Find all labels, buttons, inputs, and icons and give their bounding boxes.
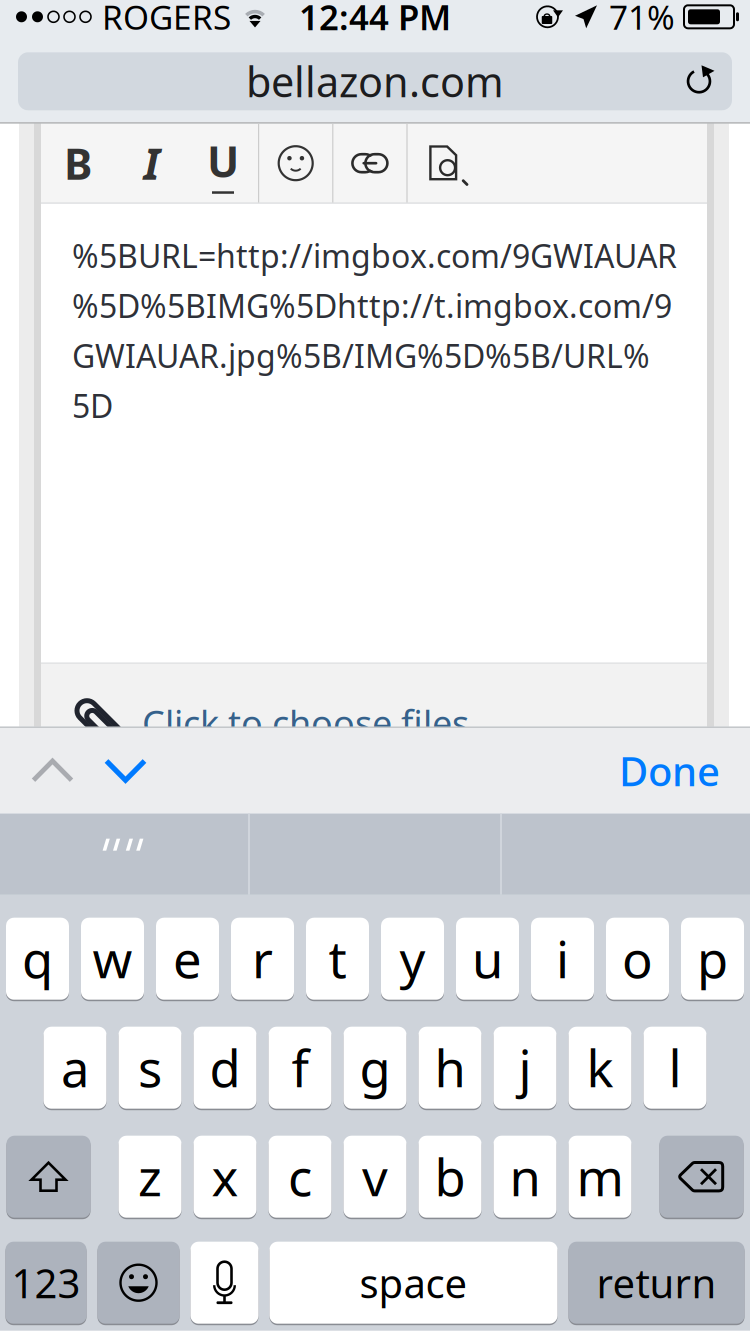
button[interactable]: k [568,1026,631,1110]
button[interactable]: f [268,1026,331,1110]
button[interactable]: c [268,1135,331,1219]
staticText: I [143,135,159,192]
staticText: h [434,1034,465,1101]
button[interactable]: w [81,917,144,1001]
button[interactable]: i [531,917,594,1001]
staticText: t [328,925,346,992]
button[interactable]: Click to choose files [125,703,469,743]
staticText: k [586,1034,613,1101]
staticText: %5D%5BIMG%5Dhttp://t.imgbox.com/9 [72,284,672,327]
button[interactable]: t [306,917,369,1001]
button[interactable]: Shift [6,1135,90,1219]
button[interactable]: q [6,917,69,1001]
button[interactable]: Quote marks suggestion [0,814,248,895]
button[interactable]: Insert link [333,124,406,203]
button[interactable]: Dictation [190,1241,258,1325]
button[interactable]: space [269,1241,557,1325]
button[interactable]: b [418,1135,481,1219]
button[interactable]: d [193,1026,256,1110]
staticText: j [518,1034,531,1101]
staticText: Click to choose files [142,699,469,747]
button[interactable]: n [493,1135,556,1219]
staticText: space [359,1256,467,1309]
staticText: bellazon.com [246,54,504,109]
staticText: 5D [72,384,113,427]
staticText: y [399,925,425,992]
button[interactable]: j [493,1026,556,1110]
staticText: l [668,1034,681,1101]
button[interactable]: return [568,1241,744,1325]
button[interactable]: Preview [408,124,481,203]
button[interactable]: Emoji [97,1241,179,1325]
button[interactable]: u [456,917,519,1001]
staticText: n [509,1143,540,1210]
button[interactable]: x [193,1135,256,1219]
button[interactable]: e [156,917,219,1001]
staticText: Done [619,744,720,797]
staticText: g [359,1034,390,1101]
staticText: B [64,135,92,192]
staticText: return [596,1256,716,1309]
staticText: w [92,925,132,992]
button[interactable]: v [343,1135,406,1219]
button[interactable]: a [43,1026,106,1110]
staticText: U [207,133,239,189]
staticText: r [252,925,273,992]
staticText: 123 [11,1256,80,1309]
button[interactable]: bellazon.com [18,52,732,110]
staticText: ROGERS [102,0,231,39]
button[interactable]: m [568,1135,631,1219]
staticText: v [362,1143,388,1210]
staticText: b [434,1143,465,1210]
staticText: %5BURL=http://imgbox.com/9GWIAUAR [72,234,677,277]
button[interactable]: s [118,1026,181,1110]
staticText: d [209,1034,240,1101]
staticText: 12:44 PM [299,0,451,40]
staticText: q [22,925,53,992]
staticText: f [291,1034,308,1101]
button[interactable]: g [343,1026,406,1110]
staticText: e [173,925,202,992]
button[interactable]: y [381,917,444,1001]
button[interactable]: Bold [41,124,115,203]
staticText: GWIAUAR.jpg%5B/IMG%5D%5B/URL% [72,334,650,377]
staticText: a [61,1034,89,1101]
button[interactable]: Delete [659,1135,743,1219]
staticText: s [138,1034,162,1101]
staticText: i [556,925,569,992]
staticText: z [138,1143,162,1210]
button[interactable]: Previous field [16,728,89,814]
button[interactable]: z [118,1135,181,1219]
staticText: 71% [609,0,675,39]
staticText: c [288,1143,312,1210]
button[interactable]: Next field [89,728,162,814]
button[interactable]: Done [619,728,750,814]
button[interactable]: 123 [5,1241,86,1325]
staticText: o [622,925,653,992]
staticText: m [576,1143,623,1210]
button[interactable]: r [231,917,294,1001]
button[interactable]: Italic [115,124,188,203]
button[interactable]: Underline [188,124,258,203]
staticText: x [211,1143,238,1210]
button[interactable]: h [418,1026,481,1110]
staticText: u [472,925,503,992]
button[interactable]: l [643,1026,706,1110]
button[interactable]: o [606,917,669,1001]
button[interactable]: Emoticons [259,124,332,203]
staticText: p [697,925,728,992]
button[interactable]: p [681,917,744,1001]
